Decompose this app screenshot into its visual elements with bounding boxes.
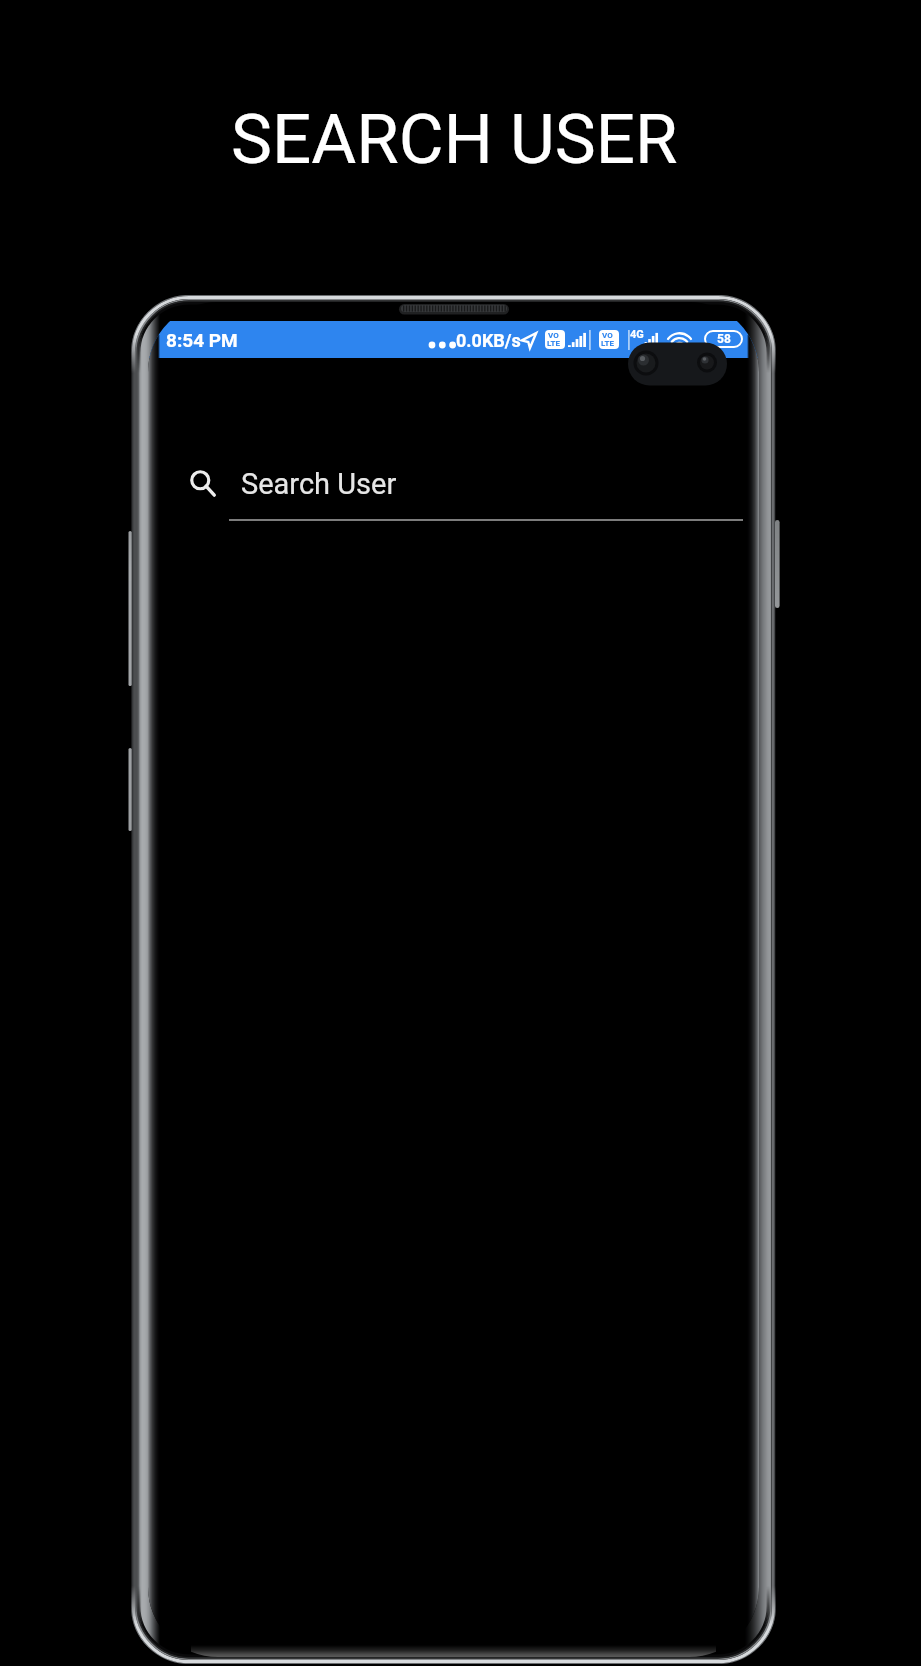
staticText: 4G: [630, 328, 644, 341]
staticText: VO: [602, 331, 613, 340]
staticText: 58: [717, 332, 731, 346]
staticText: SEARCH USER: [231, 99, 678, 180]
staticText: 0.0KB/s: [456, 330, 521, 351]
other: Search: [190, 470, 217, 497]
button[interactable]: Search: [148, 463, 759, 543]
staticText: LTE: [547, 339, 560, 348]
staticText: VO: [548, 331, 559, 340]
staticText: Search User: [241, 467, 397, 501]
staticText: LTE: [601, 339, 614, 348]
staticText: 8:54 PM: [166, 329, 238, 351]
